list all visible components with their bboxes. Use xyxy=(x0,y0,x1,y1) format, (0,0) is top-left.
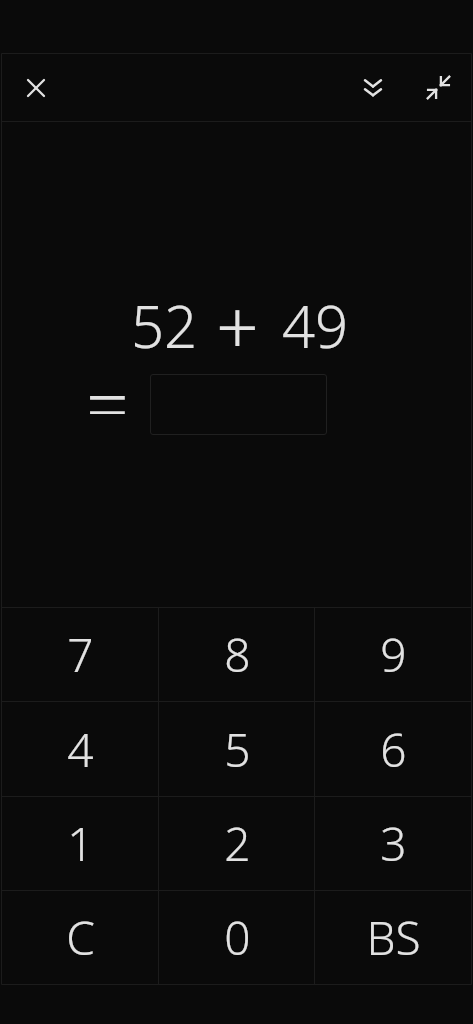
button[interactable]: 8 xyxy=(159,607,315,702)
staticText: 0 xyxy=(224,906,251,969)
button[interactable]: C xyxy=(2,890,159,984)
staticText: C xyxy=(66,906,95,969)
staticText: + xyxy=(216,275,259,377)
button[interactable]: 4 xyxy=(2,702,159,796)
staticText: 7 xyxy=(67,623,94,686)
staticText: 52 xyxy=(131,286,198,365)
staticText: BS xyxy=(366,906,421,969)
button[interactable]: 1 xyxy=(2,796,159,890)
staticText: 2 xyxy=(224,812,251,875)
button[interactable]: Answer xyxy=(150,374,327,435)
staticText: 4 xyxy=(67,718,94,781)
button[interactable]: 6 xyxy=(315,702,471,796)
staticText: 9 xyxy=(380,623,407,686)
button[interactable]: 2 xyxy=(159,796,315,890)
staticText: 3 xyxy=(380,812,407,875)
button[interactable]: Collapse xyxy=(415,64,462,111)
button[interactable]: Close xyxy=(12,64,59,111)
staticText: = xyxy=(86,352,129,414)
staticText: 49 xyxy=(282,286,349,365)
button[interactable]: 5 xyxy=(159,702,315,796)
button[interactable]: BS xyxy=(315,890,471,984)
button[interactable]: 7 xyxy=(2,607,159,702)
button[interactable]: 0 xyxy=(159,890,315,984)
button[interactable]: 3 xyxy=(315,796,471,890)
button[interactable]: Show history xyxy=(349,64,396,111)
staticText: 6 xyxy=(380,718,407,781)
staticText: 1 xyxy=(67,812,94,875)
button[interactable]: 9 xyxy=(315,607,471,702)
staticText: 5 xyxy=(224,718,251,781)
staticText: 8 xyxy=(224,623,251,686)
